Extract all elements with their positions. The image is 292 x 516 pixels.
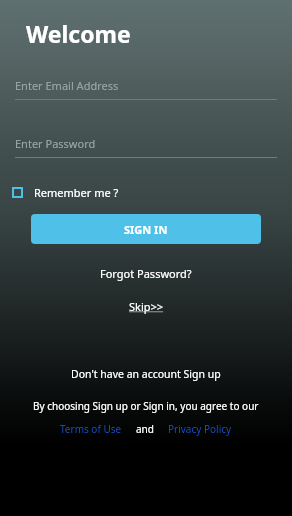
- staticText: and: [136, 422, 154, 436]
- staticText: Forgot Password?: [100, 266, 192, 281]
- staticText: Remember me ?: [34, 185, 119, 200]
- button[interactable]: Enter Password: [15, 129, 277, 157]
- button[interactable]: Forgot Password?: [96, 262, 196, 285]
- button[interactable]: Remember me ?: [12, 185, 119, 200]
- button[interactable]: Privacy Policy: [168, 422, 232, 436]
- staticText: Enter Password: [15, 136, 96, 151]
- button[interactable]: Don't have an account Sign up: [67, 363, 225, 385]
- staticText: SIGN IN: [124, 222, 168, 237]
- staticText: Terms of Use: [60, 422, 122, 436]
- button[interactable]: Terms of Use: [60, 422, 122, 436]
- staticText: Skip>>: [129, 299, 164, 314]
- staticText: By choosing Sign up or Sign in, you agre…: [33, 399, 259, 413]
- button[interactable]: SIGN IN: [31, 214, 261, 244]
- staticText: Don't have an account Sign up: [71, 367, 221, 381]
- button[interactable]: Skip>>: [125, 295, 168, 318]
- staticText: Welcome: [26, 18, 131, 49]
- button[interactable]: Enter Email Address: [15, 71, 277, 99]
- staticText: Privacy Policy: [168, 422, 232, 436]
- staticText: Enter Email Address: [15, 78, 119, 93]
